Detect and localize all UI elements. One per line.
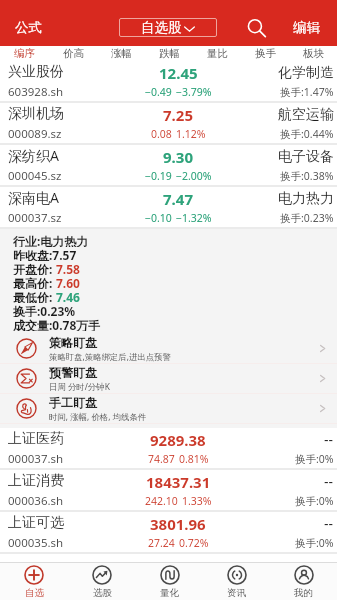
- staticText: 000035.sh: [8, 535, 64, 551]
- staticText: 深南电A: [8, 188, 59, 207]
- staticText: −0.49: [145, 85, 172, 99]
- staticText: 242.10: [145, 494, 178, 508]
- button[interactable]: 预警盯盘: [0, 364, 337, 394]
- staticText: 日周 分时/分钟K: [49, 381, 110, 392]
- staticText: --: [324, 472, 334, 491]
- button[interactable]: 编序: [0, 46, 49, 61]
- staticText: 我的: [294, 587, 313, 599]
- staticText: 深纺织A: [8, 146, 59, 165]
- staticText: 电力热力: [278, 190, 334, 208]
- button[interactable]: 策略盯盘: [0, 334, 337, 364]
- staticText: 换手:0.23%: [280, 211, 334, 225]
- staticText: 换手:1.47%: [280, 85, 334, 99]
- staticText: 7.25: [163, 105, 193, 125]
- staticText: 换手:0%: [295, 494, 334, 508]
- staticText: 27.24: [148, 536, 175, 550]
- staticText: 开盘价:: [13, 261, 56, 275]
- staticText: 换手:0%: [295, 452, 334, 466]
- button[interactable]: 价高: [49, 46, 97, 61]
- staticText: 涨幅: [111, 47, 132, 60]
- staticText: 编辑: [293, 19, 320, 36]
- button[interactable]: 上证消费: [0, 470, 337, 512]
- staticText: 3801.96: [150, 514, 206, 534]
- staticText: −1.32%: [176, 211, 212, 225]
- staticText: 选股: [93, 587, 112, 599]
- staticText: 0.08: [151, 127, 172, 141]
- staticText: 策略盯盘,策略绑定后,进出点预警: [49, 351, 171, 362]
- staticText: 换手:0%: [295, 536, 334, 550]
- staticText: 电子设备: [278, 148, 334, 166]
- button[interactable]: 编辑: [275, 9, 337, 46]
- button[interactable]: 深南电A: [0, 187, 337, 229]
- staticText: 换手:0.38%: [280, 169, 334, 183]
- staticText: 价高: [63, 47, 84, 60]
- staticText: 时间, 涨幅, 价格, 均线条件: [49, 411, 147, 422]
- staticText: 最高价:: [13, 275, 56, 289]
- staticText: 000089.sz: [8, 126, 62, 142]
- staticText: 18437.31: [146, 472, 211, 492]
- staticText: 换手:0.23%: [13, 303, 76, 317]
- staticText: 0.81%: [179, 452, 209, 466]
- button[interactable]: 深圳机场: [0, 103, 337, 145]
- staticText: 7.58: [56, 261, 80, 275]
- staticText: 量化: [160, 587, 179, 599]
- staticText: --: [324, 430, 334, 449]
- staticText: 7.60: [56, 275, 80, 289]
- staticText: 7.46: [56, 289, 80, 303]
- button[interactable]: 手工盯盘: [0, 394, 337, 424]
- staticText: 公式: [15, 19, 42, 36]
- button[interactable]: 公式: [0, 9, 56, 46]
- staticText: 编序: [14, 47, 35, 60]
- staticText: 换手: [255, 47, 276, 60]
- staticText: −2.00%: [176, 169, 212, 183]
- button[interactable]: 我的: [270, 563, 337, 600]
- staticText: 深圳机场: [8, 105, 64, 123]
- staticText: −0.10: [145, 211, 172, 225]
- staticText: 换手:0.44%: [280, 127, 334, 141]
- staticText: 自选: [25, 587, 44, 599]
- staticText: 资讯: [227, 587, 246, 599]
- staticText: −0.19: [145, 169, 172, 183]
- button[interactable]: 换手: [241, 46, 289, 61]
- staticText: 手工盯盘: [49, 395, 97, 410]
- staticText: 板块: [303, 47, 324, 60]
- staticText: 74.87: [148, 452, 175, 466]
- staticText: 量比: [207, 47, 228, 60]
- button[interactable]: 资讯: [203, 563, 270, 600]
- staticText: −3.79%: [176, 85, 212, 99]
- staticText: 跌幅: [159, 47, 180, 60]
- button[interactable]: 量比: [193, 46, 241, 61]
- staticText: 兴业股份: [8, 63, 64, 81]
- button[interactable]: 兴业股份: [0, 61, 337, 103]
- staticText: 自选股: [141, 19, 182, 36]
- staticText: 化学制造: [278, 64, 334, 82]
- staticText: 行业:电力热力: [13, 233, 89, 247]
- button[interactable]: 板块: [289, 46, 337, 61]
- staticText: 预警盯盘: [49, 365, 97, 380]
- staticText: 成交量:0.78万手: [13, 317, 101, 331]
- staticText: 1.12%: [176, 127, 206, 141]
- staticText: 策略盯盘: [49, 335, 97, 350]
- staticText: 9.30: [163, 147, 193, 167]
- staticText: 000037.sh: [8, 451, 64, 467]
- button[interactable]: 上证可选: [0, 512, 337, 554]
- staticText: 9289.38: [150, 430, 206, 450]
- button[interactable]: 自选: [0, 563, 68, 600]
- staticText: 0.72%: [179, 536, 209, 550]
- staticText: 航空运输: [278, 106, 334, 124]
- button[interactable]: 跌幅: [145, 46, 193, 61]
- staticText: 上证可选: [8, 514, 64, 532]
- button[interactable]: 量化: [136, 563, 203, 600]
- staticText: 最低价:: [13, 289, 56, 303]
- staticText: 12.45: [159, 63, 198, 83]
- staticText: 上证消费: [8, 472, 64, 490]
- staticText: 7.47: [163, 189, 193, 209]
- button[interactable]: 深纺织A: [0, 145, 337, 187]
- button[interactable]: Search: [237, 9, 275, 46]
- button[interactable]: 上证医药: [0, 428, 337, 470]
- button[interactable]: 涨幅: [97, 46, 145, 61]
- button[interactable]: 选股: [68, 563, 136, 600]
- staticText: --: [324, 514, 334, 533]
- staticText: 000036.sh: [8, 493, 64, 509]
- button[interactable]: 自选股: [119, 18, 217, 37]
